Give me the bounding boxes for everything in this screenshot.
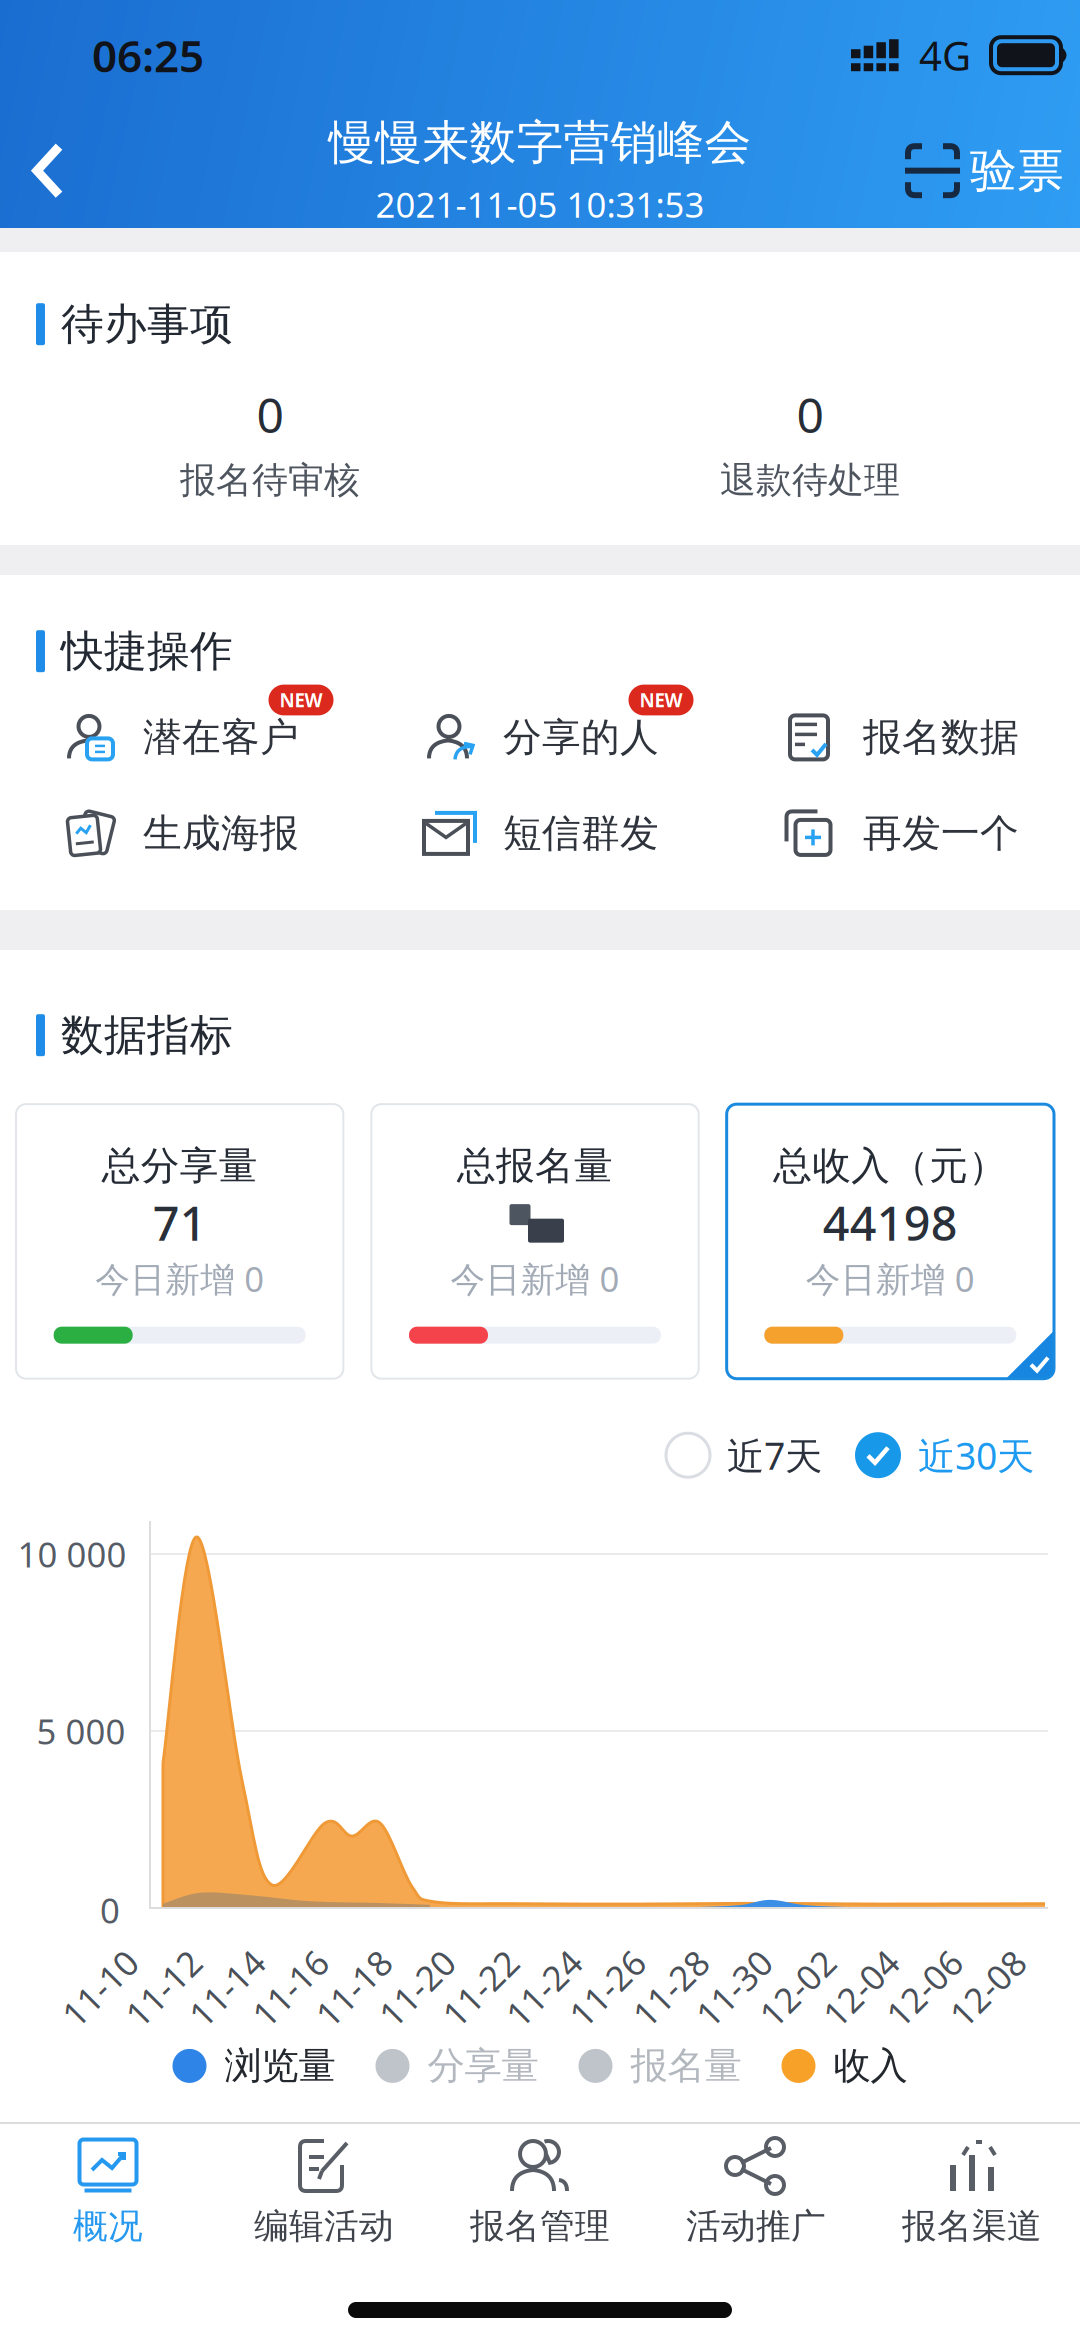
staticText: 浏览量 [224,2043,335,2089]
staticText: 报名数据 [863,714,1019,761]
button[interactable]: 编辑活动 [216,2139,432,2248]
button[interactable]: 0 [540,382,1080,502]
staticText: 生成海报 [143,810,299,857]
staticText: 44198 [823,1192,958,1254]
staticText: 概况 [73,2205,143,2248]
staticText: 报名量 [630,2043,741,2089]
staticText: 2021-11-05 10:31:53 [375,181,704,227]
staticText: 12-02 [752,1965,843,2011]
staticText: 总报名量 [457,1142,613,1190]
staticText: 验票 [970,142,1064,199]
button[interactable]: 报名管理 [432,2139,648,2248]
button[interactable]: 潜在客户 [0,714,299,761]
button[interactable]: 短信群发 [360,810,659,857]
staticText: 0 [100,1887,120,1933]
staticText: 慢慢来数字营销峰会 [328,114,751,171]
staticText: 今日新增 0 [450,1256,619,1302]
staticText: 5 000 [36,1708,125,1754]
staticText: 报名渠道 [902,2205,1042,2248]
staticText: 11-16 [245,1965,336,2011]
button[interactable]: 再发一个 [720,810,1019,857]
button[interactable]: 近7天 [666,1430,822,1480]
button[interactable]: 生成海报 [0,810,299,857]
staticText: 近30天 [918,1430,1034,1480]
button[interactable]: 报名渠道 [864,2139,1080,2248]
staticText: 报名待审核 [180,458,360,502]
staticText: 数据指标 [61,1009,233,1061]
staticText: 0 [796,382,823,446]
button[interactable]: 总分享量 [16,1104,343,1379]
staticText: 短信群发 [503,810,659,857]
staticText: 11-28 [625,1965,716,2011]
staticText: 06:25 [92,26,204,84]
staticText: 11-30 [688,1965,779,2011]
staticText: 今日新增 0 [95,1256,264,1302]
button[interactable]: 0 [0,382,540,502]
button[interactable]: 验票 [905,142,1080,199]
button[interactable]: 活动推广 [648,2139,864,2248]
staticText: 11-12 [118,1965,209,2011]
button[interactable]: 报名数据 [720,714,1019,761]
staticText: 报名管理 [470,2205,610,2248]
staticText: 11-14 [181,1965,272,2011]
staticText: 分享量 [427,2043,538,2089]
staticText: 快捷操作 [61,625,233,677]
staticText: 11-18 [308,1965,399,2011]
staticText: 0 [256,382,283,446]
staticText: 活动推广 [686,2205,826,2248]
button[interactable]: 总收入（元） [727,1104,1054,1379]
staticText: 71 [153,1192,207,1254]
staticText: 再发一个 [863,810,1019,857]
staticText: 总分享量 [102,1142,258,1190]
staticText: 潜在客户 [143,714,299,761]
staticText: 待办事项 [61,298,233,350]
button[interactable]: 近30天 [855,1430,1034,1480]
staticText: 收入 [833,2043,907,2089]
staticText: 11-20 [371,1965,462,2011]
staticText: 总收入（元） [773,1142,1007,1190]
staticText: NEW [279,688,322,712]
staticText: 10 000 [17,1531,126,1577]
staticText: 12-04 [815,1965,906,2011]
staticText: 今日新增 0 [806,1256,975,1302]
button[interactable]: 概况 [0,2139,216,2248]
staticText: 12-08 [942,1965,1033,2011]
staticText: 11-24 [498,1965,589,2011]
staticText: 11-26 [562,1965,653,2011]
staticText: NEW [639,688,682,712]
staticText: 4G [919,29,971,82]
staticText: 12-06 [879,1965,970,2011]
button[interactable]: 总报名量 [371,1104,699,1379]
staticText: 分享的人 [503,714,659,761]
staticText: 编辑活动 [254,2205,394,2248]
staticText: 11-22 [435,1965,526,2011]
staticText: 11-10 [54,1965,145,2011]
button[interactable]: Back [0,144,63,198]
staticText: 退款待处理 [720,458,900,502]
button[interactable]: 分享的人 [360,714,659,761]
staticText: 近7天 [727,1430,822,1480]
